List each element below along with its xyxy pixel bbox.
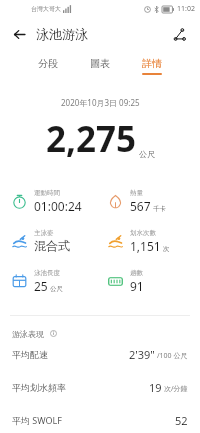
staticText: 2'39": [129, 347, 155, 362]
button[interactable]: 趟數: [108, 261, 200, 301]
button[interactable]: 平均 SWOLF: [12, 412, 188, 428]
staticText: 公尺: [139, 149, 155, 159]
staticText: 次/分鐘: [164, 384, 188, 394]
staticText: 游泳表現: [12, 329, 44, 339]
staticText: 圖表: [90, 57, 110, 70]
staticText: 泳池游泳: [36, 26, 88, 42]
staticText: 泳池長度: [34, 269, 60, 277]
staticText: 平均划水頻率: [12, 382, 66, 393]
button[interactable]: 運動時間: [12, 181, 100, 221]
staticText: 91: [130, 278, 144, 294]
button[interactable]: Share: [166, 21, 192, 47]
staticText: 千卡: [153, 205, 166, 213]
staticText: 25: [34, 278, 48, 294]
staticText: 567: [130, 198, 151, 214]
staticText: 次: [163, 245, 170, 253]
staticText: 公尺: [50, 285, 63, 293]
staticText: 熱量: [130, 189, 143, 197]
staticText: 19: [149, 380, 162, 395]
staticText: 平均配速: [12, 349, 48, 360]
staticText: /100 公尺: [157, 351, 188, 361]
staticText: 划水次數: [130, 229, 156, 237]
button[interactable]: 熱量: [108, 181, 200, 221]
staticText: 01:00:24: [34, 198, 82, 214]
button[interactable]: 圖表: [85, 55, 115, 77]
staticText: 混合式: [34, 238, 70, 253]
button[interactable]: 划水次數: [108, 221, 200, 261]
button[interactable]: 詳情: [137, 55, 167, 77]
button[interactable]: 平均配速: [12, 346, 188, 362]
button[interactable]: Info: [47, 327, 60, 340]
staticText: 1,151: [130, 238, 161, 254]
staticText: 分段: [38, 57, 58, 70]
staticText: 主泳姿: [34, 229, 54, 237]
staticText: 台灣大哥大: [31, 5, 61, 13]
button[interactable]: 平均划水頻率: [12, 379, 188, 395]
staticText: 2,275: [46, 115, 137, 163]
staticText: 2020年10月3日 09:25: [61, 97, 140, 108]
button[interactable]: Back: [6, 21, 32, 47]
staticText: 趟數: [130, 269, 143, 277]
staticText: 52: [175, 413, 188, 428]
staticText: 平均 SWOLF: [12, 414, 62, 426]
button[interactable]: 分段: [33, 55, 63, 77]
button[interactable]: 泳池長度: [12, 261, 100, 301]
button[interactable]: 主泳姿: [12, 221, 100, 261]
staticText: 詳情: [142, 57, 162, 70]
staticText: 運動時間: [34, 189, 60, 197]
staticText: 11:02: [177, 4, 195, 14]
